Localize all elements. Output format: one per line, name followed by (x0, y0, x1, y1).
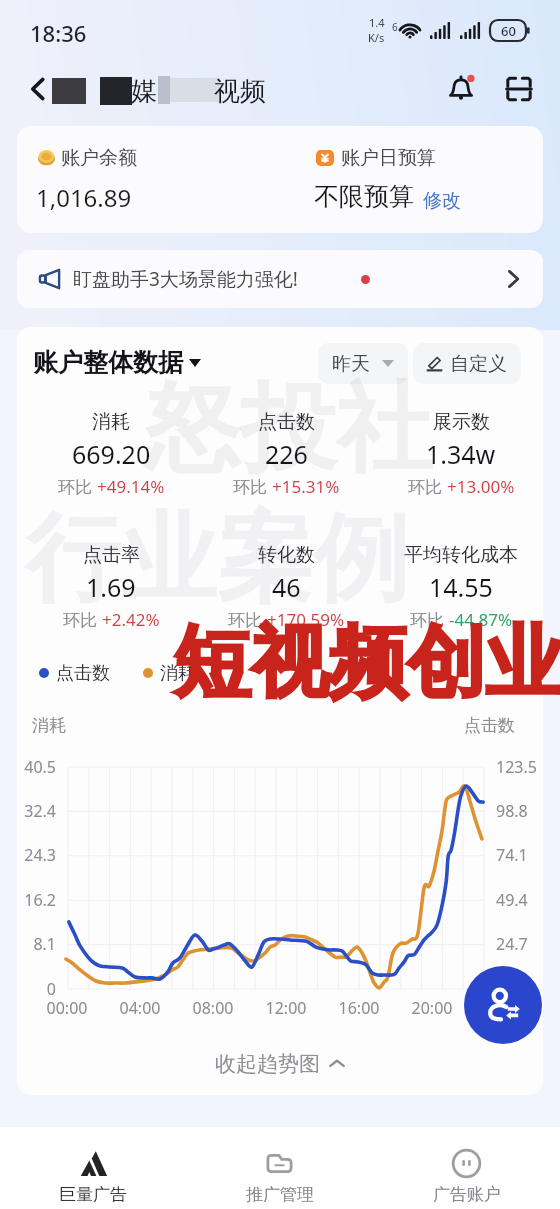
staticText: 转化数 (258, 543, 315, 567)
button[interactable]: 消耗 (31, 410, 191, 498)
button[interactable]: 修改 (420, 182, 464, 212)
staticText: +49.14% (97, 475, 165, 498)
staticText: +170.59% (267, 608, 345, 631)
staticText: 不限预算 (314, 181, 414, 212)
staticText: 环比 (408, 475, 447, 498)
button[interactable]: Switch account (464, 966, 542, 1044)
staticText: 226 (265, 437, 308, 471)
staticText: 消耗 (32, 715, 66, 736)
staticText: 1.4 (369, 15, 385, 30)
staticText: 24.7 (496, 933, 528, 955)
staticText: 消耗 (92, 410, 130, 434)
staticText: 账户余额 (61, 146, 137, 170)
staticText: 环比 (63, 608, 102, 631)
staticText: 20:00 (400, 997, 464, 1019)
button[interactable]: 展示数 (381, 410, 541, 498)
staticText: 平均转化成本 (404, 543, 518, 567)
staticText: 1.69 (86, 570, 136, 604)
staticText: 盯盘助手3大场景能力强化! (73, 266, 298, 292)
button[interactable]: 点击率 (31, 543, 191, 631)
staticText: 98.8 (496, 800, 528, 822)
button[interactable]: Scan (496, 66, 542, 112)
staticText: 1.34w (426, 437, 496, 471)
staticText: 环比 (58, 475, 97, 498)
button[interactable]: 盯盘助手3大场景能力强化! (17, 250, 543, 308)
staticText: 视频 (214, 75, 266, 108)
button[interactable]: Notifications (438, 66, 484, 112)
staticText: 媒 (131, 75, 157, 108)
staticText: 消耗 (160, 662, 196, 685)
staticText: 669.20 (72, 437, 151, 471)
staticText: 广告账户 (433, 1184, 501, 1205)
staticText: 昨天 (332, 352, 370, 376)
staticText: 16.2 (17, 889, 56, 911)
staticText: 74.1 (496, 844, 528, 866)
staticText: 点击数 (464, 715, 515, 736)
button[interactable]: 推广管理 (186, 1127, 373, 1209)
staticText: 8.1 (17, 933, 56, 955)
staticText: 12:00 (254, 997, 318, 1019)
staticText: 点击率 (83, 543, 140, 567)
staticText: 46 (272, 570, 301, 604)
staticText: 1,016.89 (36, 181, 132, 214)
staticText: 32.4 (17, 800, 56, 822)
staticText: 修改 (423, 189, 461, 213)
staticText: 16:00 (327, 997, 391, 1019)
staticText: +15.31% (272, 475, 340, 498)
staticText: 49.4 (496, 889, 528, 911)
staticText: 收起趋势图 (215, 1051, 320, 1077)
staticText: +2.42% (102, 608, 160, 631)
button[interactable]: 收起趋势图 (17, 1037, 543, 1091)
staticText: 08:00 (181, 997, 245, 1019)
staticText: 行业案例 (25, 499, 409, 620)
staticText: 0 (17, 978, 56, 1000)
button[interactable]: 转化数 (206, 543, 366, 631)
staticText: 环比 (233, 475, 272, 498)
staticText: 点击数 (258, 410, 315, 434)
button[interactable]: 自定义 (413, 343, 521, 384)
staticText: 24.3 (17, 844, 56, 866)
staticText: 怒投社 (144, 369, 432, 490)
staticText: 04:00 (108, 997, 172, 1019)
button[interactable]: 账户余额 (17, 126, 543, 233)
staticText: K/s (368, 30, 385, 45)
button[interactable]: 巨量广告 (0, 1127, 186, 1209)
staticText: 18:36 (30, 18, 87, 48)
staticText: +13.00% (447, 475, 515, 498)
button[interactable]: 广告账户 (373, 1127, 560, 1209)
staticText: 巨量广告 (59, 1184, 127, 1205)
staticText: 账户整体数据 (33, 347, 183, 378)
staticText: 6 (392, 20, 398, 34)
staticText: 60 (501, 22, 516, 40)
button[interactable]: 昨天 (318, 343, 408, 384)
button[interactable]: 账户整体数据 (33, 347, 201, 378)
staticText: 展示数 (433, 410, 490, 434)
staticText: 环比 (228, 608, 267, 631)
staticText: 点击数 (56, 662, 110, 685)
staticText: 短视频创业 (173, 614, 560, 712)
staticText: 推广管理 (246, 1184, 314, 1205)
button[interactable]: Back (16, 67, 60, 111)
staticText: 123.5 (496, 756, 537, 778)
staticText: 自定义 (450, 352, 507, 376)
staticText: 环比 (410, 608, 449, 631)
staticText: 账户日预算 (341, 146, 436, 170)
staticText: 40.5 (17, 756, 56, 778)
staticText: 00:00 (35, 997, 99, 1019)
button[interactable]: 点击数 (206, 410, 366, 498)
staticText: 14.55 (429, 570, 493, 604)
staticText: -44.87% (449, 608, 513, 631)
button[interactable]: 平均转化成本 (381, 543, 541, 631)
